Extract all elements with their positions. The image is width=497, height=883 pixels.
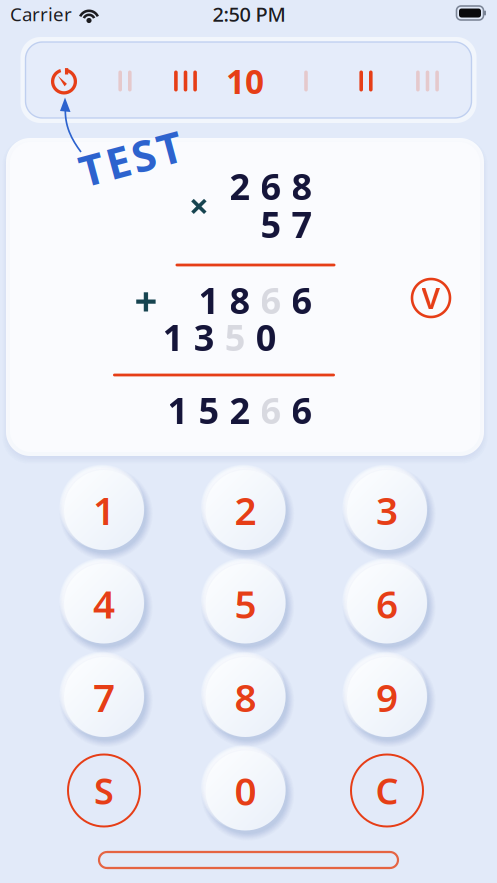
staticText: 6 [260, 386, 281, 434]
button[interactable]: 0 [195, 740, 296, 841]
staticText: 3 [194, 313, 215, 361]
button[interactable]: 3 [336, 459, 437, 560]
staticText: 5 [260, 200, 281, 248]
staticText: Carrier [10, 2, 72, 26]
staticText: 1 [93, 484, 115, 536]
staticText: 6 [291, 386, 312, 434]
staticText: 5 [198, 386, 219, 434]
staticText: 6 [260, 162, 281, 210]
staticText: 8 [291, 162, 312, 210]
staticText: × [189, 182, 209, 228]
staticText: 6 [376, 578, 398, 629]
button[interactable]: 1 [53, 459, 154, 560]
button[interactable]: 9 [336, 646, 437, 747]
staticText: V [421, 278, 440, 317]
staticText: S [94, 767, 114, 814]
staticText: 0 [256, 313, 277, 361]
staticText: + [134, 273, 157, 326]
staticText: 6 [291, 276, 312, 324]
button[interactable]: 4 [53, 553, 154, 654]
staticText: C [375, 767, 398, 814]
staticText: 1 [167, 386, 188, 434]
staticText: 9 [376, 671, 398, 723]
staticText: 5 [225, 313, 246, 361]
staticText: 8 [234, 671, 256, 723]
staticText: 2 [229, 386, 250, 434]
staticText: 2:50 PM [212, 1, 285, 27]
staticText: 1 [163, 313, 184, 361]
staticText: TEST [78, 130, 184, 186]
staticText: 2 [234, 484, 256, 536]
staticText: 7 [93, 671, 115, 723]
button[interactable]: 6 [336, 553, 437, 654]
button[interactable]: Progress [0, 30, 497, 130]
button[interactable]: C [336, 740, 437, 841]
staticText: 5 [234, 578, 256, 629]
button[interactable]: 5 [195, 553, 296, 654]
staticText: 0 [234, 765, 256, 816]
button[interactable]: 7 [53, 646, 154, 747]
staticText: 7 [291, 200, 312, 248]
staticText: 2 [229, 162, 250, 210]
button[interactable]: 8 [195, 646, 296, 747]
staticText: 1 [198, 276, 219, 324]
staticText: 6 [260, 276, 281, 324]
staticText: 8 [229, 276, 250, 324]
button[interactable]: Validate [403, 270, 459, 326]
staticText: 10 [226, 59, 264, 103]
button[interactable]: S [53, 740, 154, 841]
button[interactable]: 2 [195, 459, 296, 560]
staticText: 3 [376, 484, 398, 536]
staticText: 4 [93, 578, 115, 629]
